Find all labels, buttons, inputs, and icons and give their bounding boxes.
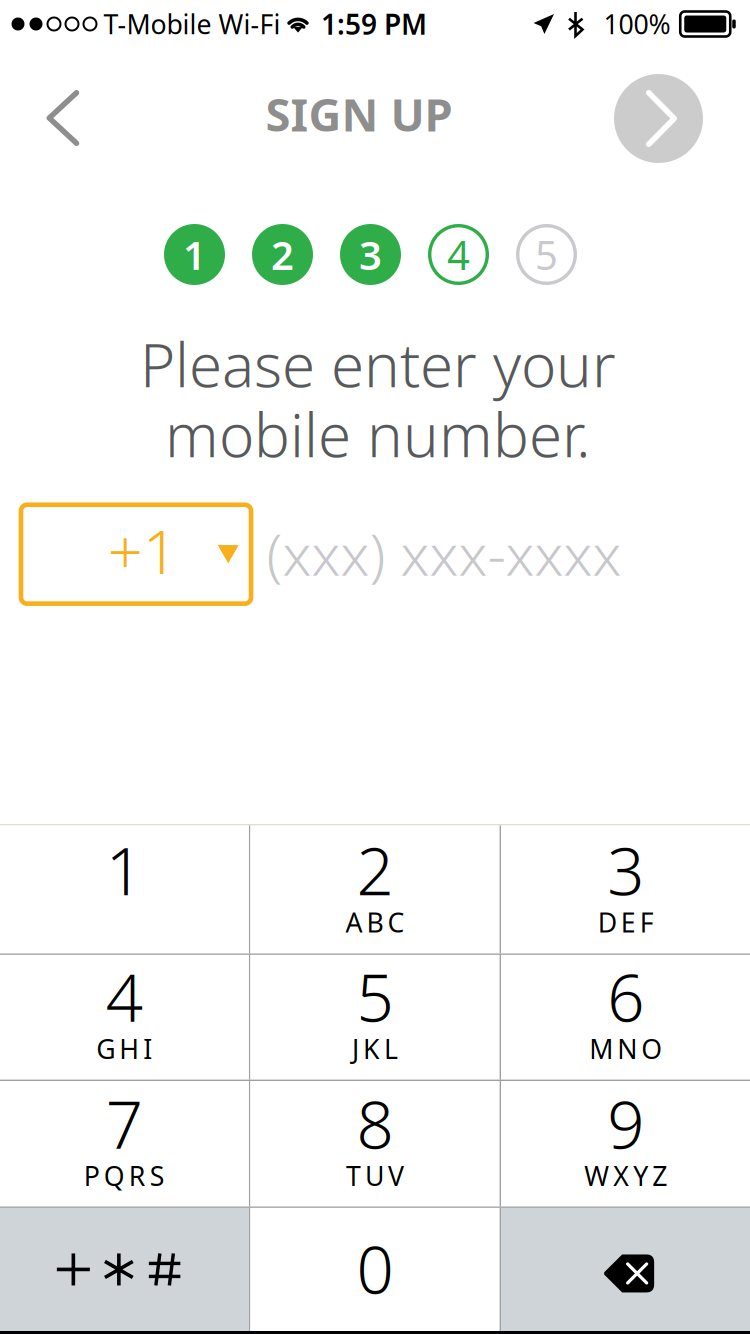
staticText: SIGN UP [265,84,452,144]
staticText: 1 [106,826,143,913]
staticText: T-Mobile Wi-Fi [103,6,280,42]
staticText: 2 [271,228,294,281]
button[interactable]: 3 [501,825,750,953]
button[interactable]: Plus, star and pound [0,1208,249,1331]
staticText: G H I [96,1031,152,1066]
button[interactable]: Back [20,62,105,174]
staticText: 8 [356,1080,393,1167]
button[interactable]: 8 [250,1081,500,1206]
staticText: W X Y Z [584,1158,667,1193]
button[interactable]: 1 [0,825,249,953]
button[interactable]: 2 [250,825,500,953]
staticText: 4 [106,953,143,1040]
button[interactable]: 7 [0,1081,249,1206]
staticText: +1 [108,509,178,591]
button[interactable]: 0 [250,1208,500,1331]
button[interactable]: Country code [19,502,253,606]
staticText: J K L [352,1031,398,1066]
staticText: 1 [183,228,206,281]
staticText: 0 [356,1225,393,1312]
button[interactable]: Next [603,63,713,173]
staticText: mobile number. [165,394,591,474]
button[interactable]: 5 [250,955,500,1080]
staticText: 3 [359,228,382,281]
staticText: D E F [598,904,654,940]
staticText: (xxx) xxx-xxxx [266,515,621,591]
staticText: 2 [356,826,393,913]
staticText: Please enter your [140,324,616,404]
staticText: T U V [346,1158,404,1193]
staticText: 6 [607,953,644,1040]
staticText: 7 [106,1080,143,1167]
staticText: 5 [356,953,393,1040]
staticText: 9 [607,1080,644,1167]
staticText: P Q R S [84,1158,165,1193]
staticText: 3 [607,826,644,913]
staticText: M N O [589,1031,662,1066]
staticText: 1:59 PM [321,5,427,43]
button[interactable]: 6 [501,955,750,1080]
button[interactable]: 9 [501,1081,750,1206]
staticText: 5 [535,228,558,281]
staticText: A B C [345,904,404,940]
staticText: 4 [447,228,470,281]
button[interactable]: 4 [0,955,249,1080]
staticText: 100% [603,6,670,42]
button[interactable]: Delete [501,1208,750,1331]
